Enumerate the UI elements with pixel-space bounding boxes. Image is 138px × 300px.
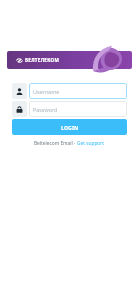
staticText: Username	[33, 88, 60, 95]
staticText: БЕЛТЕЛЕКОМ	[25, 57, 60, 63]
button[interactable]: Get support	[77, 140, 104, 147]
staticText: Beltelecom Email ·	[34, 140, 77, 147]
staticText: Password	[33, 106, 58, 113]
other: Username	[12, 83, 27, 99]
button[interactable]: Username	[29, 83, 127, 99]
staticText: LOGIN	[61, 124, 79, 131]
button[interactable]: LOGIN	[12, 119, 127, 135]
button[interactable]: Password	[29, 101, 127, 117]
other: Password	[12, 101, 27, 117]
